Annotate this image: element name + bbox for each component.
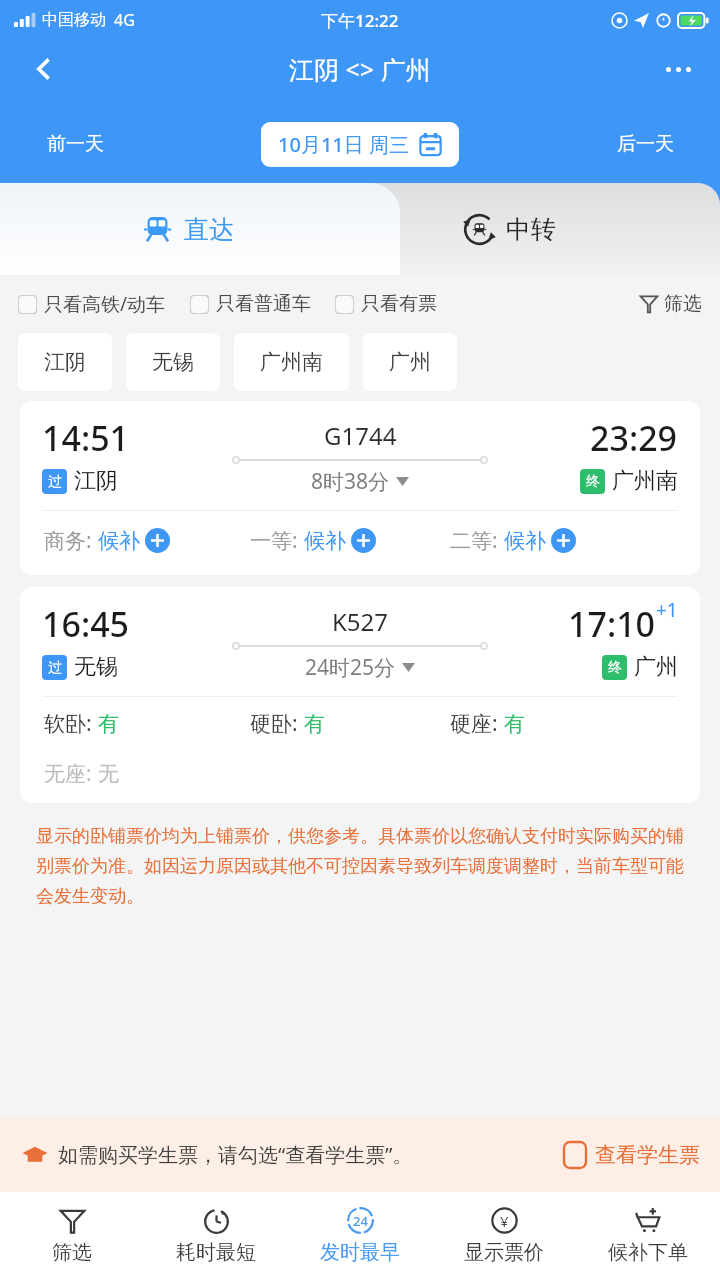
button[interactable]: 硬座: (450, 709, 525, 738)
staticText: 商务: (44, 526, 98, 555)
button[interactable]: 江阴 (18, 333, 112, 391)
staticText: 发时最早 (320, 1240, 400, 1265)
staticText: 筛选 (664, 292, 702, 316)
staticText: 16:45 (42, 601, 130, 647)
button[interactable]: 只看有票 (335, 292, 437, 316)
staticText: 后一天 (617, 132, 674, 156)
staticText: 江阴 (74, 467, 118, 495)
staticText: 江阴 (44, 349, 86, 375)
button[interactable]: 候补下单 (576, 1192, 720, 1280)
staticText: 无座: (44, 759, 98, 788)
staticText: 中转 (506, 214, 556, 245)
staticText: 无 (98, 761, 119, 787)
staticText: 硬卧: (250, 709, 304, 738)
button[interactable]: 前一天 (0, 113, 150, 175)
staticText: ¥ (500, 1211, 509, 1231)
staticText: 如需购买学生票，请勾选“查看学生票”。 (58, 1141, 413, 1168)
button[interactable]: 一等: (250, 526, 450, 555)
button[interactable]: 只看高铁/动车 (18, 291, 166, 317)
staticText: +1 (656, 597, 678, 623)
button[interactable]: 无座: (44, 759, 119, 788)
staticText: 过 (48, 473, 62, 491)
staticText: 中国移动 (42, 10, 106, 30)
staticText: 候补 (98, 528, 140, 554)
staticText: 24时25分 (305, 653, 396, 682)
staticText: 直达 (184, 214, 234, 245)
button[interactable]: 只看普通车 (190, 292, 311, 316)
staticText: 广州 (389, 349, 431, 375)
staticText: 显示的卧铺票价均为上铺票价，供您参考。具体票价以您确认支付时实际购买的铺别票价为… (36, 825, 684, 908)
button[interactable]: 24 (288, 1192, 432, 1280)
staticText: 有 (98, 711, 119, 737)
staticText: 查看学生票 (595, 1142, 700, 1168)
staticText: 二等: (450, 526, 504, 555)
staticText: 17:10 (568, 601, 656, 647)
button[interactable]: 查看学生票 (564, 1142, 700, 1168)
staticText: 有 (504, 711, 525, 737)
button[interactable]: 16:45 (20, 587, 700, 803)
button[interactable]: 筛选 (635, 292, 706, 316)
staticText: 筛选 (52, 1240, 92, 1265)
button[interactable]: 商务: (44, 526, 250, 555)
staticText: 显示票价 (464, 1240, 544, 1265)
button[interactable]: 无锡 (126, 333, 220, 391)
staticText: 10月11日 周三 (278, 131, 409, 158)
staticText: 只看高铁/动车 (44, 291, 166, 317)
button[interactable]: 软卧: (44, 709, 250, 738)
staticText: 14:51 (42, 415, 130, 461)
staticText: 24 (353, 1212, 368, 1230)
staticText: K527 (332, 605, 389, 638)
staticText: 过 (48, 659, 62, 677)
staticText: 候补 (504, 528, 546, 554)
button[interactable]: 硬卧: (250, 709, 450, 738)
staticText: 有 (304, 711, 325, 737)
button[interactable]: 广州 (363, 333, 457, 391)
button[interactable]: 直达 (0, 183, 400, 275)
staticText: 候补下单 (608, 1240, 688, 1265)
button[interactable]: ¥ (432, 1192, 576, 1280)
staticText: G1744 (324, 419, 397, 452)
staticText: 软卧: (44, 709, 98, 738)
staticText: 23:29 (590, 415, 678, 461)
staticText: 广州南 (260, 349, 323, 375)
staticText: 终 (586, 473, 600, 491)
button[interactable]: More options (652, 43, 704, 95)
staticText: 耗时最短 (176, 1240, 256, 1265)
staticText: 只看有票 (361, 292, 437, 316)
staticText: 一等: (250, 526, 304, 555)
button[interactable]: Back (18, 43, 70, 95)
button[interactable]: 后一天 (570, 113, 720, 175)
staticText: 无锡 (152, 349, 194, 375)
button[interactable]: 中转 (300, 183, 720, 275)
button[interactable]: 筛选 (0, 1192, 144, 1280)
staticText: 硬座: (450, 709, 504, 738)
button[interactable]: 10月11日 周三 (261, 122, 459, 167)
staticText: 江阴 <> 广州 (289, 52, 431, 86)
staticText: 候补 (304, 528, 346, 554)
staticText: 8时38分 (311, 467, 390, 496)
staticText: 终 (608, 659, 622, 677)
staticText: 只看普通车 (216, 292, 311, 316)
button[interactable]: 广州南 (234, 333, 349, 391)
staticText: 下午12:22 (321, 9, 399, 32)
staticText: 前一天 (47, 132, 104, 156)
staticText: 广州南 (612, 467, 678, 495)
button[interactable]: 二等: (450, 526, 576, 555)
staticText: 4G (114, 9, 135, 31)
button[interactable]: 14:51 (20, 401, 700, 575)
button[interactable]: 耗时最短 (144, 1192, 288, 1280)
staticText: 无锡 (74, 653, 118, 681)
staticText: 广州 (634, 653, 678, 681)
